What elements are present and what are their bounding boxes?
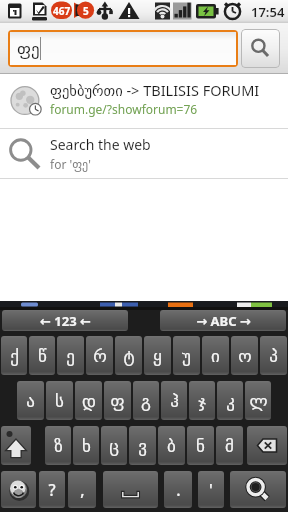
staticText: დ: [82, 391, 96, 411]
staticText: for 'ფე': [50, 156, 91, 172]
button[interactable]: Search: [230, 471, 286, 508]
button[interactable]: ი: [202, 336, 229, 375]
staticText: ს: [55, 391, 64, 411]
button[interactable]: .: [164, 471, 192, 508]
button[interactable]: ← 123 ←: [2, 310, 128, 331]
staticText: → ABC →: [196, 312, 251, 330]
staticText: forum.ge/?showforum=76: [50, 101, 198, 117]
staticText: ჯ: [198, 391, 206, 411]
button[interactable]: პ: [260, 336, 287, 375]
staticText: ლ: [249, 391, 268, 411]
staticText: ფ: [110, 391, 125, 411]
button[interactable]: რ: [86, 336, 113, 375]
staticText: .: [176, 479, 181, 501]
staticText: კ: [226, 391, 235, 411]
button[interactable]: კ: [217, 381, 243, 420]
button[interactable]: ლ: [245, 381, 271, 420]
button[interactable]: Emoji: [1, 471, 36, 508]
button[interactable]: მ: [216, 426, 243, 465]
staticText: ი: [211, 346, 220, 366]
button[interactable]: ბ: [158, 426, 185, 465]
button[interactable]: Space: [103, 471, 158, 508]
staticText: პ: [269, 346, 278, 366]
button[interactable]: ფ: [104, 381, 131, 420]
button[interactable]: Search the web: [0, 129, 288, 178]
button[interactable]: გ: [133, 381, 159, 420]
staticText: Search the web: [50, 135, 151, 154]
staticText: ე: [66, 346, 75, 366]
button[interactable]: ყ: [144, 336, 171, 375]
button[interactable]: ფეხბურთი -> TBILISIS FORUMI: [0, 74, 288, 128]
staticText: უ: [182, 346, 191, 366]
button[interactable]: ვ: [129, 426, 156, 465]
button[interactable]: ჯ: [189, 381, 215, 420]
staticText: ც: [109, 436, 119, 456]
button[interactable]: ა: [17, 381, 44, 420]
button[interactable]: ?: [39, 471, 65, 508]
button[interactable]: უ: [173, 336, 200, 375]
staticText: მ: [225, 436, 234, 456]
staticText: ო: [238, 346, 252, 366]
staticText: წ: [38, 346, 47, 366]
staticText: ,: [80, 479, 85, 501]
button[interactable]: Shift: [1, 426, 31, 465]
button[interactable]: ტ: [115, 336, 142, 375]
button[interactable]: ფე: [10, 32, 236, 65]
staticText: ზ: [54, 436, 63, 456]
staticText: ← 123 ←: [40, 312, 91, 330]
staticText: ': [209, 479, 213, 501]
button[interactable]: დ: [75, 381, 102, 420]
button[interactable]: ც: [101, 426, 127, 465]
staticText: ?: [48, 479, 56, 501]
staticText: ფე: [17, 39, 40, 59]
button[interactable]: ე: [57, 336, 84, 375]
staticText: ნ: [196, 436, 205, 456]
button[interactable]: ს: [46, 381, 73, 420]
staticText: ა: [26, 391, 35, 411]
staticText: ხ: [82, 436, 91, 456]
staticText: ტ: [123, 346, 135, 366]
staticText: ბ: [167, 436, 176, 456]
staticText: 467: [53, 4, 71, 18]
staticText: 5: [83, 4, 89, 18]
staticText: ჰ: [170, 391, 179, 411]
button[interactable]: ': [198, 471, 224, 508]
button[interactable]: Search: [241, 29, 280, 68]
button[interactable]: ჰ: [161, 381, 187, 420]
button[interactable]: Delete: [247, 426, 287, 465]
button[interactable]: ხ: [73, 426, 99, 465]
staticText: ყ: [153, 346, 162, 366]
staticText: ქ: [10, 346, 19, 366]
button[interactable]: ქ: [1, 336, 27, 375]
button[interactable]: ,: [68, 471, 96, 508]
staticText: ფეხბურთი -> TBILISIS FORUMI: [50, 80, 260, 100]
staticText: გ: [141, 391, 151, 411]
button[interactable]: ნ: [187, 426, 214, 465]
button[interactable]: ზ: [45, 426, 71, 465]
staticText: 17:54: [251, 3, 285, 21]
button[interactable]: წ: [29, 336, 55, 375]
button[interactable]: ო: [231, 336, 258, 375]
staticText: რ: [93, 346, 107, 366]
button[interactable]: → ABC →: [160, 310, 286, 331]
staticText: ვ: [138, 436, 147, 456]
